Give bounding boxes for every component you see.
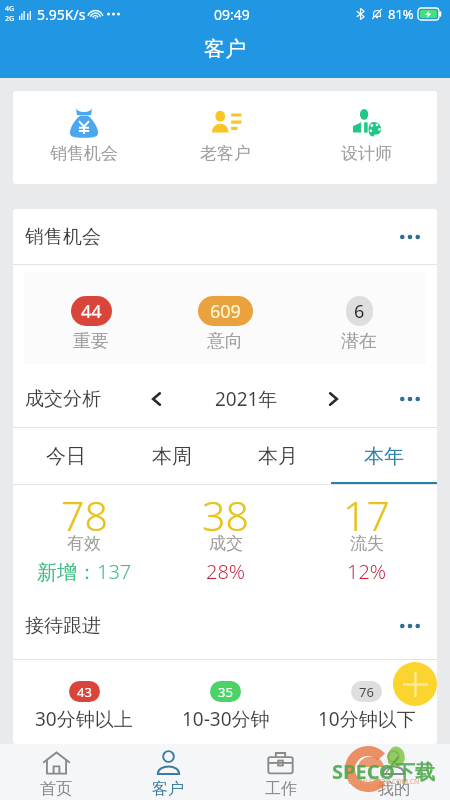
button[interactable]: More options	[395, 384, 425, 414]
staticText: 4G	[5, 4, 15, 14]
staticText: 潜在	[341, 330, 377, 353]
staticText: 工作	[265, 779, 297, 799]
button[interactable]: 工作	[224, 744, 337, 800]
staticText: 成交分析	[25, 387, 101, 411]
button[interactable]: 38	[155, 485, 296, 593]
staticText: 12%	[347, 558, 387, 585]
button[interactable]: 客户	[112, 744, 224, 800]
staticText: 78	[61, 487, 108, 543]
button[interactable]: Next year	[315, 381, 351, 417]
button[interactable]: 78	[13, 485, 155, 593]
staticText: 44	[81, 299, 102, 324]
staticText: 销售机会	[50, 143, 118, 164]
button[interactable]: 老客户	[155, 91, 296, 184]
staticText: 本月	[258, 444, 298, 469]
staticText: 销售机会	[25, 225, 101, 249]
staticText: 10分钟以下	[318, 706, 416, 732]
button[interactable]: 6	[292, 296, 426, 353]
staticText: 新增：137	[37, 558, 132, 585]
staticText: 接待跟进	[25, 614, 101, 638]
staticText: 43	[77, 683, 92, 701]
button[interactable]: 今日	[13, 428, 119, 484]
button[interactable]: 本月	[225, 428, 331, 484]
staticText: 流失	[350, 533, 384, 554]
staticText: 10-30分钟	[182, 706, 270, 732]
button[interactable]: 35	[155, 681, 296, 732]
button[interactable]: More options	[395, 611, 425, 641]
staticText: 609	[210, 299, 241, 324]
staticText: 首页	[40, 779, 72, 799]
staticText: 76	[359, 683, 374, 701]
staticText: 81%	[388, 5, 414, 23]
button[interactable]: More options	[395, 222, 425, 252]
button[interactable]: 44	[24, 296, 158, 353]
staticText: 客户	[204, 36, 246, 62]
staticText: 6	[354, 299, 365, 324]
staticText: 30分钟以上	[35, 706, 133, 732]
staticText: 客户	[152, 779, 184, 799]
staticText: 2G	[5, 14, 15, 24]
staticText: 成交	[209, 533, 243, 554]
staticText: 5.95K/s	[37, 5, 86, 24]
staticText: 老客户	[200, 143, 251, 164]
button[interactable]: 本周	[119, 428, 225, 484]
staticText: 本年	[364, 444, 404, 469]
staticText: 重要	[73, 330, 109, 353]
staticText: 我的	[378, 779, 410, 799]
button[interactable]: 销售机会	[13, 209, 437, 264]
button[interactable]: 销售机会	[13, 91, 155, 184]
staticText: 17	[343, 487, 390, 543]
button[interactable]: 我的	[337, 744, 450, 800]
staticText: 28%	[206, 558, 246, 585]
button[interactable]: Previous year	[139, 381, 175, 417]
staticText: SPECO下载	[332, 758, 435, 785]
staticText: 本周	[152, 444, 192, 469]
button[interactable]: 接待跟进	[13, 593, 437, 659]
button[interactable]: Add	[393, 662, 437, 706]
staticText: 2021年	[215, 386, 278, 412]
staticText: 09:49	[214, 5, 250, 24]
staticText: 今日	[46, 444, 86, 469]
staticText: WWW.SPECO.COM.CN	[348, 777, 420, 787]
staticText: 有效	[67, 533, 101, 554]
button[interactable]: 设计师	[296, 91, 437, 184]
button[interactable]: 76	[296, 681, 437, 732]
button[interactable]: 17	[296, 485, 437, 593]
staticText: 意向	[207, 330, 243, 353]
button[interactable]: 609	[158, 296, 292, 353]
button[interactable]: 43	[13, 681, 155, 732]
staticText: 38	[202, 487, 249, 543]
staticText: 35	[218, 683, 233, 701]
button[interactable]: 本年	[331, 428, 437, 484]
staticText: 设计师	[341, 143, 392, 164]
button[interactable]: 首页	[0, 744, 112, 800]
